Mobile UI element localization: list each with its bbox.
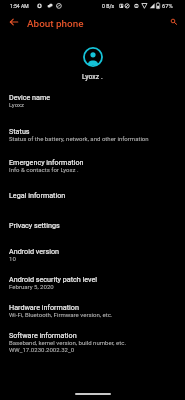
button[interactable]: Search: [166, 14, 180, 28]
button[interactable]: Emergency information: [0, 153, 185, 186]
staticText: 10: [9, 255, 16, 262]
button[interactable]: Legal information: [0, 186, 185, 216]
button[interactable]: Device name: [0, 88, 185, 122]
staticText: Wi-Fi, Bluetooth, Firmware version, etc.: [9, 311, 113, 318]
staticText: Android security patch level: [9, 275, 98, 283]
staticText: WW_17.0230.2002.32_0: [9, 346, 75, 353]
staticText: 0 B/s: [102, 3, 115, 9]
staticText: Status of the battery, network, and othe…: [9, 135, 149, 142]
staticText: Software information: [9, 331, 77, 339]
staticText: About phone: [27, 18, 84, 30]
staticText: 1:54 AM: [10, 3, 29, 9]
staticText: 67%: [162, 3, 173, 10]
staticText: February 5, 2020: [9, 283, 54, 290]
button[interactable]: Privacy settings: [0, 216, 185, 242]
button[interactable]: Back: [7, 15, 21, 29]
staticText: Device name: [9, 93, 51, 101]
staticText: Hardware information: [9, 303, 79, 311]
staticText: Android version: [9, 247, 59, 255]
staticText: Status: [9, 127, 30, 135]
button[interactable]: Android security patch level: [0, 270, 185, 298]
button[interactable]: Android version: [0, 242, 185, 270]
staticText: Info & contacts for Lyoxz .: [9, 166, 79, 173]
button[interactable]: Hardware information: [0, 298, 185, 326]
staticText: Lyoxz: [9, 101, 25, 108]
staticText: Legal information: [9, 191, 66, 199]
button[interactable]: Status: [0, 122, 185, 153]
staticText: Baseband, kernel version, build number, …: [9, 339, 126, 346]
button[interactable]: Software information: [0, 326, 185, 356]
staticText: Lyoxz .: [82, 73, 103, 81]
staticText: Privacy settings: [9, 221, 60, 229]
staticText: Emergency information: [9, 158, 84, 166]
